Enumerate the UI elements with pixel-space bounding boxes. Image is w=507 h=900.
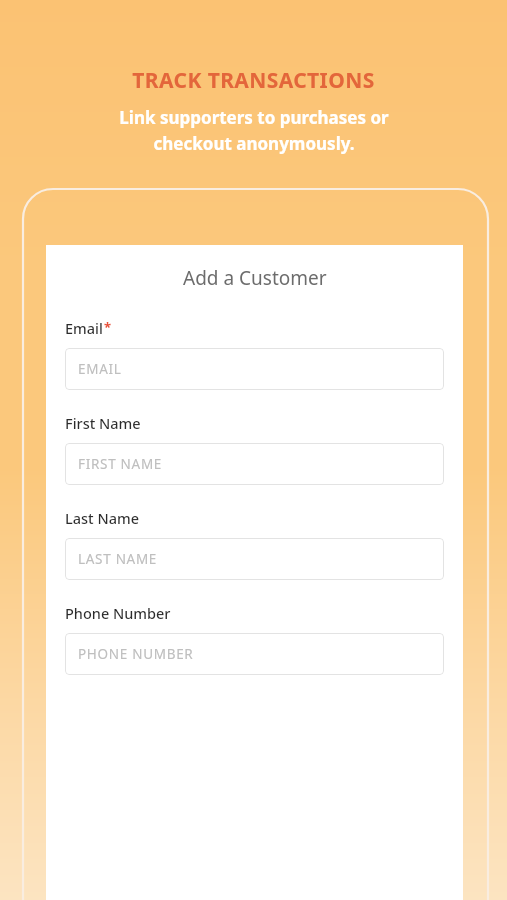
staticText: * [104,318,112,336]
staticText: PHONE NUMBER [78,645,194,663]
staticText: Link supporters to purchases or checkout… [119,106,389,155]
button[interactable]: EMAIL [65,348,444,390]
staticText: Email [65,318,103,338]
staticText: First Name [65,413,141,433]
staticText: Phone Number [65,603,171,623]
staticText: Last Name [65,508,140,528]
staticText: LAST NAME [78,550,158,568]
button[interactable]: PHONE NUMBER [65,633,444,675]
button[interactable]: FIRST NAME [65,443,444,485]
button[interactable]: LAST NAME [65,538,444,580]
staticText: EMAIL [78,360,122,378]
staticText: Add a Customer [183,265,327,291]
staticText: TRACK TRANSACTIONS [132,66,375,95]
staticText: FIRST NAME [78,455,163,473]
